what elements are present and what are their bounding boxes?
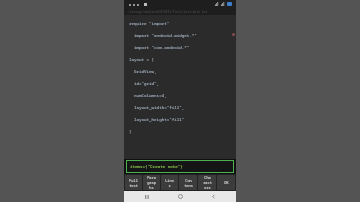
staticText: ract	[203, 180, 212, 185]
staticText: import "android.widget.*"	[134, 33, 197, 39]
staticText: grap	[147, 180, 156, 185]
button[interactable]: items={"Create note"}	[126, 160, 234, 173]
staticText: tens	[184, 183, 193, 188]
staticText: layout_width="fill",	[134, 105, 185, 111]
button[interactable]: Back	[203, 191, 223, 202]
staticText: Con	[185, 178, 192, 183]
button[interactable]: Para	[143, 175, 160, 190]
staticText: import "com.android.*"	[134, 45, 190, 51]
staticText: layout = {	[129, 57, 155, 63]
button[interactable]: OK	[217, 175, 235, 190]
staticText: ers	[204, 185, 211, 190]
button[interactable]: Home	[170, 191, 190, 202]
staticText: require "import"	[129, 21, 170, 27]
staticText: numColumns=4,	[134, 93, 167, 99]
button[interactable]: Full	[125, 175, 142, 190]
button[interactable]: Cha	[198, 175, 216, 190]
staticText: items={"Create note"}	[130, 164, 183, 170]
staticText: }	[129, 129, 132, 135]
staticText: Full	[129, 178, 138, 183]
staticText: GridView,	[134, 69, 157, 75]
staticText: Cha	[204, 175, 211, 180]
button[interactable]: Recents	[137, 191, 157, 202]
button[interactable]: Line	[161, 175, 178, 190]
staticText: s	[168, 183, 171, 188]
button[interactable]: Con	[179, 175, 197, 190]
staticText: OK	[224, 180, 229, 185]
staticText: layout_height="fill"	[134, 117, 185, 123]
staticText: /storage/emulated/0/8181/Tools/test/main…	[128, 10, 208, 14]
staticText: id="grid",	[134, 81, 160, 87]
staticText: Para	[147, 175, 156, 180]
staticText: hs	[149, 185, 154, 190]
staticText: Line	[165, 178, 174, 183]
staticText: text	[129, 183, 138, 188]
